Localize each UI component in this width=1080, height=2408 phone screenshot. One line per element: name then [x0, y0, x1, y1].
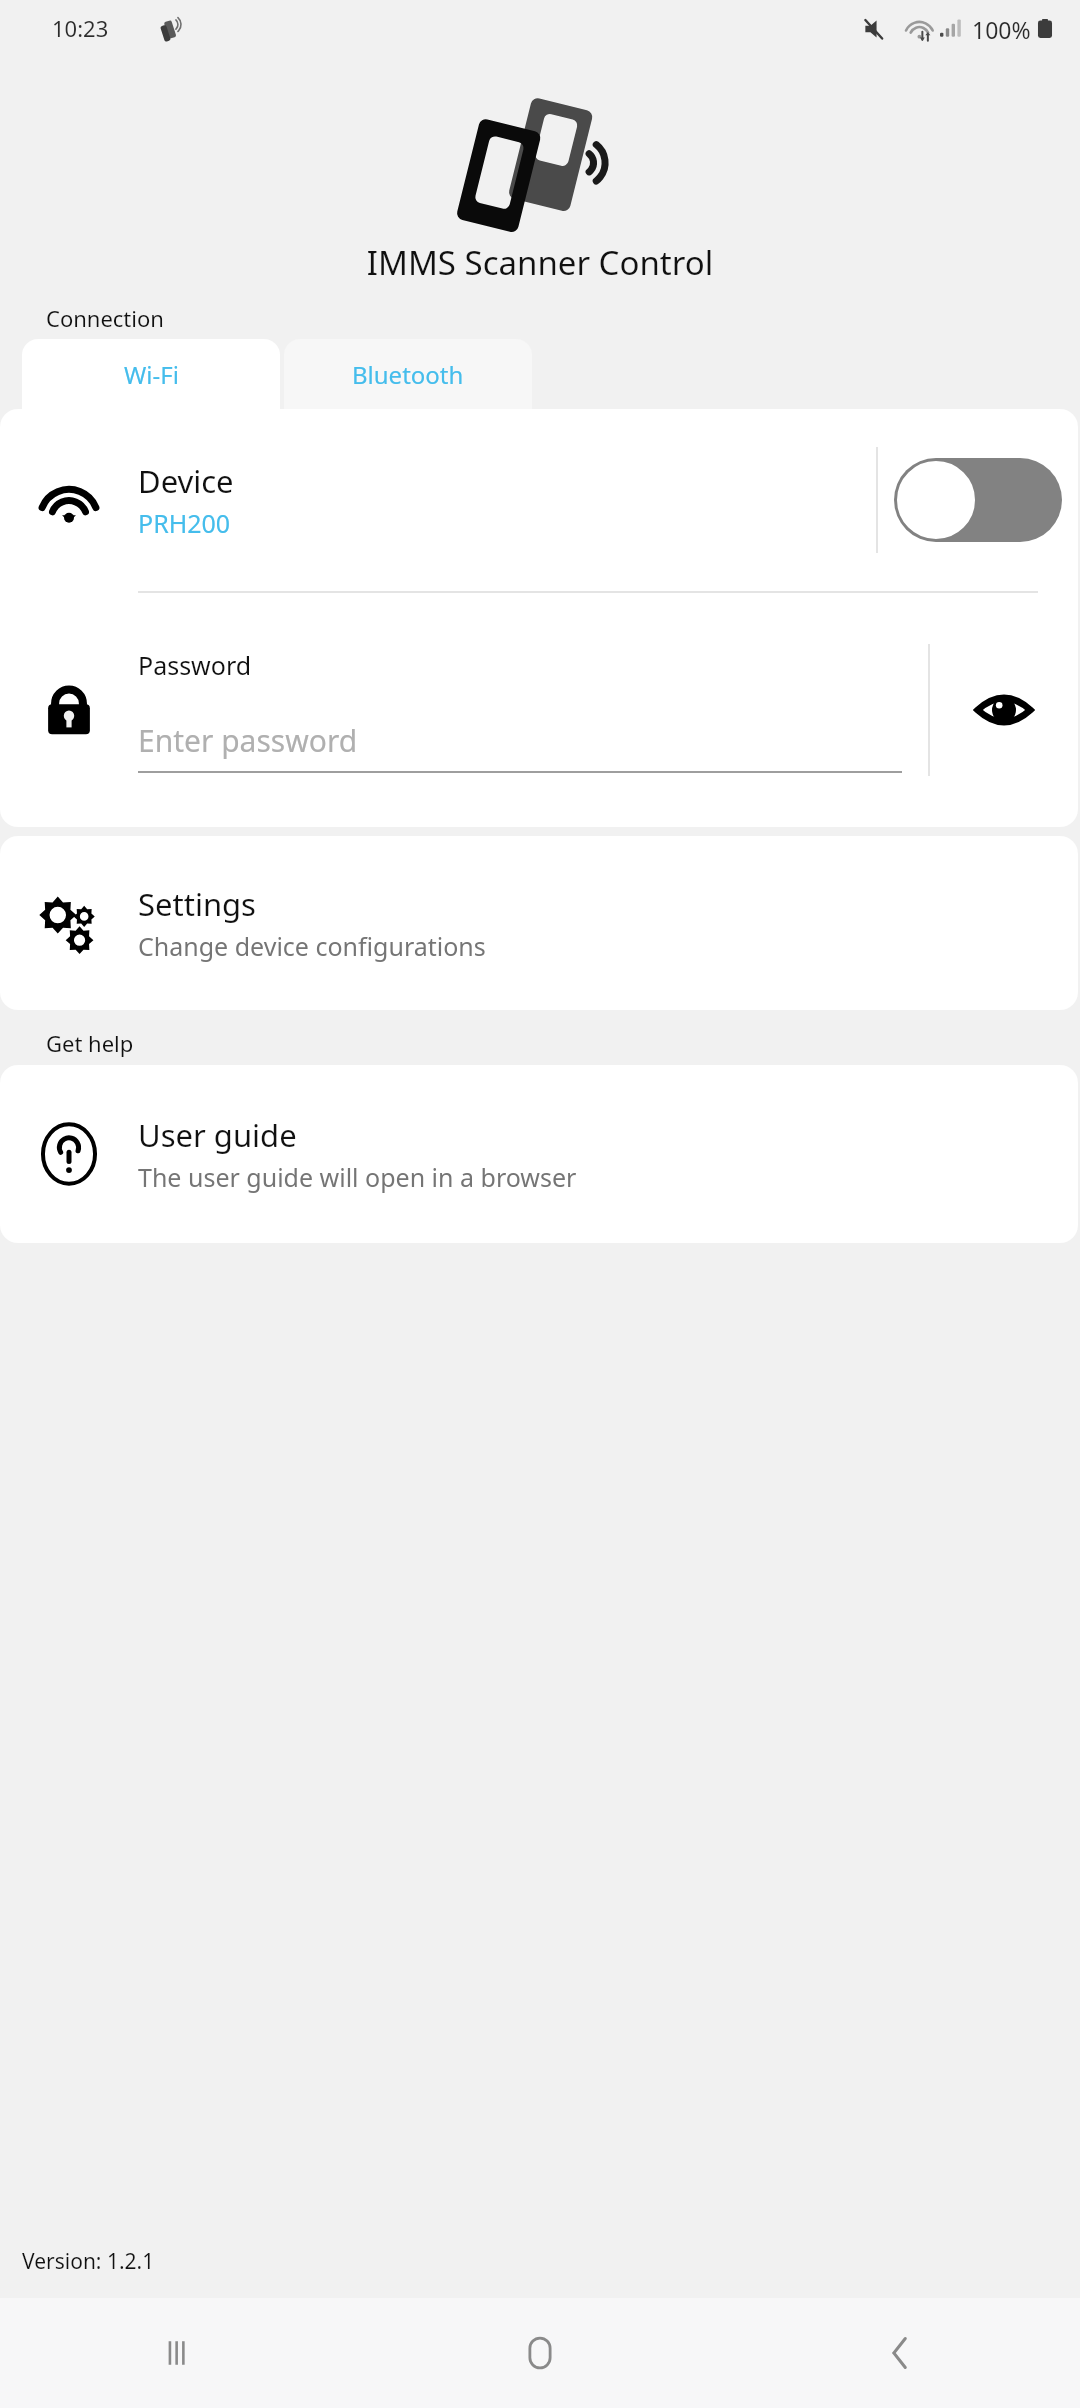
button[interactable]: Settings [0, 836, 1078, 1010]
button[interactable]: Password [138, 648, 902, 773]
staticText: Connection [46, 303, 164, 333]
button[interactable]: Show password [930, 593, 1078, 827]
button[interactable]: Recent apps [80, 2298, 280, 2408]
staticText: Get help [46, 1028, 134, 1058]
staticText: Version: 1.2.1 [22, 2247, 155, 2276]
button[interactable]: Bluetooth [284, 339, 532, 409]
staticText: Wi-Fi [124, 358, 179, 391]
staticText: Device [138, 460, 234, 502]
button[interactable]: Device [0, 409, 1078, 591]
staticText: Bluetooth [352, 358, 464, 391]
staticText: 100% [972, 14, 1031, 45]
staticText: Change device configurations [138, 929, 486, 963]
staticText: Enter password [138, 720, 358, 761]
button[interactable]: Back [800, 2298, 1000, 2408]
staticText: The user guide will open in a browser [138, 1160, 577, 1194]
button[interactable]: Connect device toggle [878, 409, 1078, 591]
staticText: Settings [138, 883, 256, 925]
staticText: PRH200 [138, 506, 231, 540]
button[interactable]: Wi-Fi [22, 339, 280, 409]
staticText: IMMS Scanner Control [0, 240, 1080, 285]
button[interactable]: Home [440, 2298, 640, 2408]
staticText: Password [138, 648, 252, 682]
staticText: 10:23 [52, 13, 109, 43]
button[interactable]: User guide [0, 1065, 1078, 1243]
staticText: User guide [138, 1114, 297, 1156]
